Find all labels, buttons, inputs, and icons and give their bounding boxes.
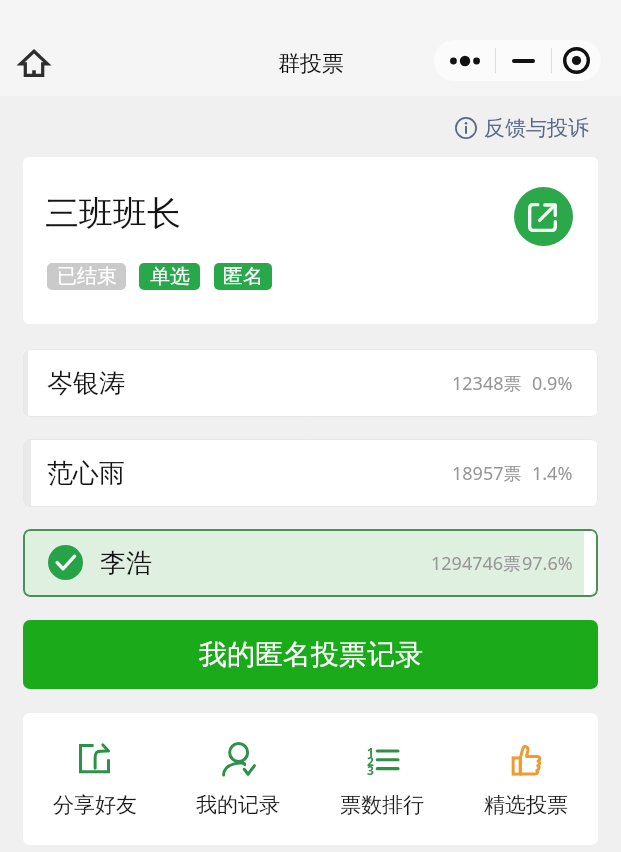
staticText: 已结束 xyxy=(57,264,117,289)
staticText: 1294746票 xyxy=(431,551,522,576)
staticText: 97.6% xyxy=(522,551,573,576)
button[interactable]: Minimize xyxy=(496,40,551,81)
button[interactable]: Close xyxy=(552,40,601,81)
button[interactable]: 已结束 xyxy=(47,263,126,290)
staticText: 李浩 xyxy=(100,547,152,580)
staticText: 我的记录 xyxy=(196,792,280,818)
staticText: 分享好友 xyxy=(53,792,137,818)
button[interactable]: 反馈与投诉 xyxy=(455,115,589,141)
button[interactable]: 精选投票 xyxy=(454,713,598,845)
button[interactable]: Share vote xyxy=(514,187,573,246)
button[interactable]: 我的匿名投票记录 xyxy=(23,620,598,689)
staticText: 范心雨 xyxy=(47,457,125,490)
button[interactable]: 范心雨 xyxy=(23,439,598,507)
staticText: 反馈与投诉 xyxy=(484,115,589,141)
button[interactable]: 1 xyxy=(310,713,454,845)
button[interactable]: More options xyxy=(434,40,495,81)
staticText: 2 xyxy=(367,753,374,769)
staticText: 18957票 xyxy=(452,461,522,486)
staticText: 12348票 xyxy=(452,371,522,396)
staticText: 票数排行 xyxy=(340,792,424,818)
staticText: 我的匿名投票记录 xyxy=(199,637,423,672)
button[interactable]: 岑银涛 xyxy=(23,349,598,417)
staticText: 0.9% xyxy=(532,371,573,396)
staticText: 群投票 xyxy=(278,50,344,78)
staticText: 单选 xyxy=(150,264,190,289)
button[interactable]: 分享好友 xyxy=(23,713,166,845)
button[interactable]: 我的记录 xyxy=(166,713,310,845)
button[interactable]: 李浩 xyxy=(23,529,598,597)
button[interactable]: 单选 xyxy=(139,263,200,290)
button[interactable]: Home xyxy=(19,49,49,77)
button[interactable]: 匿名 xyxy=(214,263,272,290)
staticText: 三班班长 xyxy=(45,192,181,235)
staticText: 岑银涛 xyxy=(47,367,125,400)
staticText: 匿名 xyxy=(223,264,263,289)
staticText: 1 xyxy=(367,744,374,760)
staticText: 1.4% xyxy=(532,461,573,486)
staticText: 精选投票 xyxy=(484,792,568,818)
staticText: 3 xyxy=(367,762,374,778)
